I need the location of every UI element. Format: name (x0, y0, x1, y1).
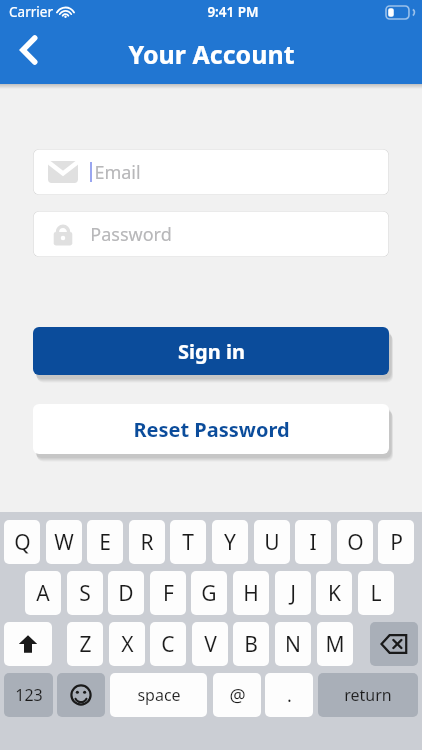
staticText: Reset Password (133, 416, 290, 443)
button[interactable]: Emoji (57, 673, 105, 717)
staticText: R (140, 528, 154, 557)
staticText: G (201, 579, 217, 608)
button[interactable]: return (318, 673, 418, 717)
button[interactable]: W (46, 520, 82, 564)
staticText: X (121, 630, 134, 659)
button[interactable]: L (358, 571, 394, 615)
button[interactable]: space (110, 673, 207, 717)
staticText: V (204, 630, 217, 659)
button[interactable]: N (275, 622, 311, 666)
button[interactable]: F (150, 571, 186, 615)
button[interactable]: H (233, 571, 269, 615)
staticText: Your Account (128, 37, 295, 71)
staticText: Email (94, 160, 141, 185)
staticText: S (79, 579, 91, 608)
button[interactable]: K (316, 571, 352, 615)
button[interactable]: C (150, 622, 186, 666)
button[interactable]: Back (6, 27, 52, 73)
button[interactable]: M (317, 622, 353, 666)
button[interactable]: @ (213, 673, 261, 717)
staticText: . (287, 683, 292, 708)
button[interactable]: Reset Password (33, 404, 389, 454)
staticText: F (163, 579, 174, 608)
staticText: Carrier (9, 3, 53, 21)
button[interactable]: T (170, 520, 206, 564)
staticText: return (344, 684, 392, 706)
button[interactable]: P (378, 520, 414, 564)
button[interactable]: I (295, 520, 331, 564)
button[interactable]: R (129, 520, 165, 564)
button[interactable]: E (87, 520, 123, 564)
button[interactable]: Password (33, 211, 389, 257)
staticText: I (309, 528, 317, 557)
button[interactable]: S (67, 571, 103, 615)
staticText: J (290, 579, 296, 608)
staticText: O (347, 528, 364, 557)
button[interactable]: O (337, 520, 373, 564)
button[interactable]: 123 (4, 673, 53, 717)
staticText: @ (229, 683, 246, 708)
staticText: K (328, 579, 341, 608)
button[interactable]: U (254, 520, 290, 564)
staticText: D (118, 579, 134, 608)
button[interactable]: Email (33, 149, 389, 195)
button[interactable]: Z (67, 622, 103, 666)
button[interactable]: . (265, 673, 313, 717)
staticText: T (182, 528, 194, 557)
staticText: space (137, 684, 181, 706)
button[interactable]: X (109, 622, 145, 666)
staticText: E (99, 528, 111, 557)
staticText: H (243, 579, 259, 608)
staticText: N (285, 630, 301, 659)
staticText: A (36, 579, 50, 608)
staticText: 123 (15, 684, 43, 706)
button[interactable]: Backspace (370, 622, 418, 666)
staticText: Y (224, 528, 236, 557)
staticText: C (161, 630, 175, 659)
staticText: U (264, 528, 280, 557)
staticText: Sign in (178, 338, 245, 365)
button[interactable]: Y (212, 520, 248, 564)
button[interactable]: G (191, 571, 227, 615)
staticText: P (390, 528, 403, 557)
button[interactable]: D (108, 571, 144, 615)
staticText: Z (79, 630, 92, 659)
staticText: Q (14, 528, 31, 557)
staticText: W (54, 528, 74, 557)
button[interactable]: Sign in (33, 327, 389, 375)
staticText: Password (90, 222, 172, 247)
staticText: L (370, 579, 382, 608)
button[interactable]: A (25, 571, 61, 615)
staticText: 9:41 PM (207, 3, 259, 21)
button[interactable]: Q (4, 520, 40, 564)
button[interactable]: J (275, 571, 311, 615)
staticText: B (244, 630, 258, 659)
button[interactable]: Shift (4, 622, 52, 666)
button[interactable]: B (233, 622, 269, 666)
staticText: M (325, 630, 345, 659)
button[interactable]: V (192, 622, 228, 666)
